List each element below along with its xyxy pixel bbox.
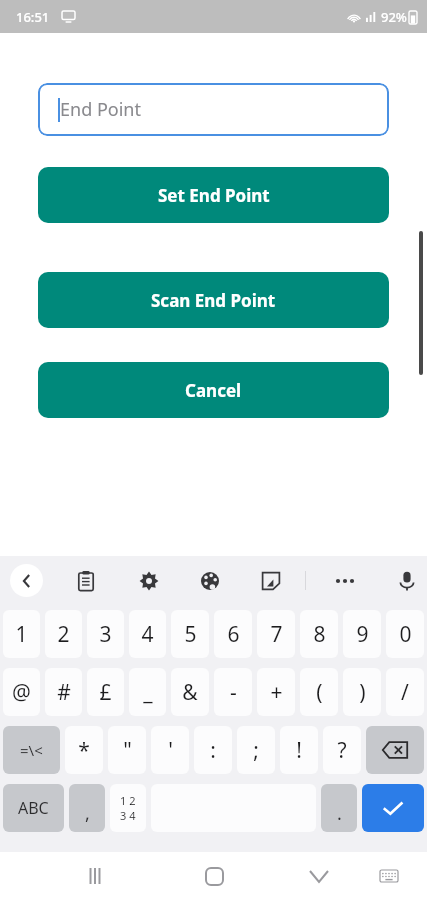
button[interactable]: , [69, 784, 105, 832]
staticText: 92% [381, 8, 407, 26]
staticText: 3 [99, 620, 112, 649]
staticText: ( [316, 678, 323, 707]
button[interactable]: =\< [3, 726, 60, 774]
button[interactable]: Hide keyboard [299, 856, 339, 896]
staticText: 2 [57, 620, 70, 649]
staticText: 16:51 [16, 8, 50, 26]
button[interactable]: # [45, 668, 82, 716]
button[interactable]: - [214, 668, 252, 716]
button[interactable]: _ [129, 668, 166, 716]
button[interactable]: ! [280, 726, 318, 774]
staticText: 0 [399, 620, 412, 649]
staticText: + [270, 678, 283, 707]
button[interactable]: Stickers [255, 565, 287, 597]
staticText: ) [359, 678, 366, 707]
staticText: ABC [18, 797, 49, 819]
staticText: & [182, 678, 198, 707]
staticText: 1 2 [120, 793, 136, 808]
staticText: =\< [20, 740, 43, 760]
button[interactable]: Cancel [38, 362, 389, 418]
button[interactable]: Scan End Point [38, 272, 389, 328]
staticText: 8 [313, 620, 326, 649]
button[interactable]: " [108, 726, 146, 774]
button[interactable]: ; [237, 726, 275, 774]
button[interactable]: Done [362, 784, 424, 832]
button[interactable]: ? [323, 726, 361, 774]
staticText: , [85, 801, 90, 826]
staticText: 1 [15, 620, 28, 649]
button[interactable]: 6 [214, 610, 252, 658]
staticText: ? [337, 736, 347, 765]
button[interactable]: * [65, 726, 103, 774]
staticText: Cancel [185, 379, 242, 402]
button[interactable]: ( [300, 668, 338, 716]
staticText: ; [253, 736, 259, 765]
staticText: 3 4 [120, 808, 136, 823]
button[interactable]: 0 [386, 610, 424, 658]
button[interactable]: Settings [133, 565, 165, 597]
staticText: £ [99, 678, 112, 707]
button[interactable]: ' [151, 726, 189, 774]
button[interactable]: Voice input [391, 565, 423, 597]
button[interactable]: 8 [300, 610, 338, 658]
staticText: : [210, 736, 216, 765]
button[interactable]: ) [343, 668, 381, 716]
staticText: 5 [184, 620, 197, 649]
button[interactable]: Set End Point [38, 167, 389, 223]
button[interactable]: 2 [45, 610, 82, 658]
button[interactable]: More options [330, 566, 360, 596]
button[interactable]: Themes [194, 565, 226, 597]
staticText: 6 [227, 620, 240, 649]
button[interactable]: 9 [343, 610, 381, 658]
button[interactable]: : [194, 726, 232, 774]
staticText: " [123, 736, 132, 765]
button[interactable]: Backspace [366, 726, 424, 774]
staticText: 7 [270, 620, 283, 649]
button[interactable]: Numbers [110, 784, 146, 832]
button[interactable]: & [171, 668, 209, 716]
staticText: Set End Point [158, 184, 270, 207]
button[interactable]: ABC [3, 784, 64, 832]
button[interactable]: 5 [171, 610, 209, 658]
button[interactable]: Change keyboard [371, 858, 407, 894]
staticText: / [401, 678, 409, 707]
button[interactable]: Recent apps [75, 856, 115, 896]
staticText: End Point [60, 97, 141, 122]
staticText: 9 [356, 620, 369, 649]
button[interactable]: Back [10, 564, 43, 597]
button[interactable]: Clipboard [70, 565, 102, 597]
staticText: ! [296, 736, 302, 765]
staticText: # [57, 678, 71, 707]
staticText: ' [168, 736, 173, 765]
staticText: @ [12, 678, 31, 707]
staticText: * [78, 736, 90, 765]
staticText: - [230, 678, 237, 707]
button[interactable]: 7 [257, 610, 295, 658]
staticText: . [337, 801, 342, 826]
button[interactable]: £ [87, 668, 124, 716]
button[interactable]: End Point [38, 83, 389, 136]
button[interactable]: 1 [3, 610, 40, 658]
staticText: Scan End Point [151, 289, 276, 312]
staticText: 4 [141, 620, 154, 649]
button[interactable]: . [321, 784, 357, 832]
button[interactable]: 4 [129, 610, 166, 658]
button[interactable]: 3 [87, 610, 124, 658]
staticText: _ [143, 678, 153, 707]
button[interactable]: Home [194, 856, 234, 896]
button[interactable]: @ [3, 668, 40, 716]
button[interactable]: + [257, 668, 295, 716]
button[interactable]: / [386, 668, 424, 716]
